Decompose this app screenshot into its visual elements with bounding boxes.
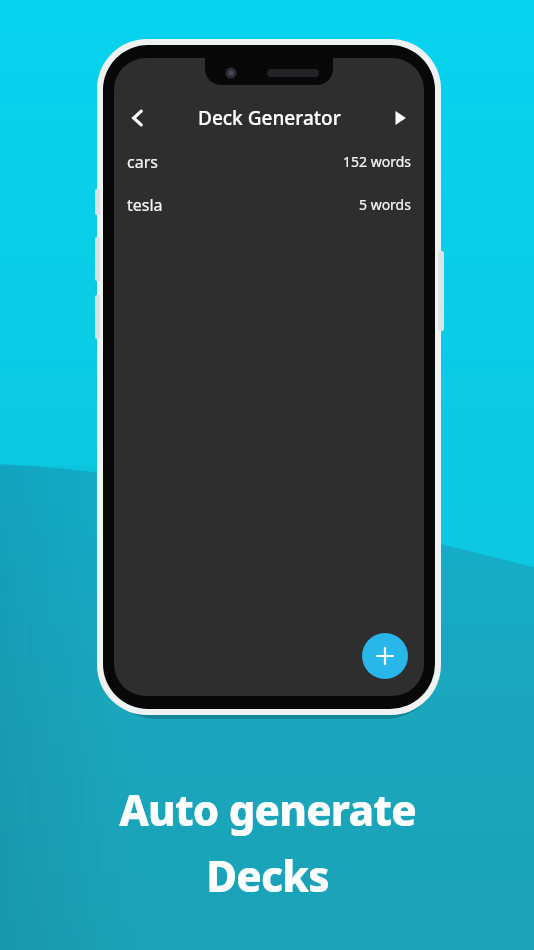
staticText: Decks: [206, 847, 329, 904]
staticText: 5 words: [359, 195, 411, 214]
staticText: Auto generate: [119, 781, 416, 838]
staticText: cars: [127, 151, 158, 173]
button[interactable]: tesla: [114, 183, 424, 226]
button[interactable]: Add deck: [362, 633, 408, 679]
button[interactable]: Back: [118, 98, 158, 138]
staticText: tesla: [127, 194, 163, 216]
staticText: 152 words: [343, 152, 411, 171]
button[interactable]: Play: [382, 100, 418, 136]
staticText: Deck Generator: [198, 105, 341, 131]
button[interactable]: cars: [114, 140, 424, 183]
